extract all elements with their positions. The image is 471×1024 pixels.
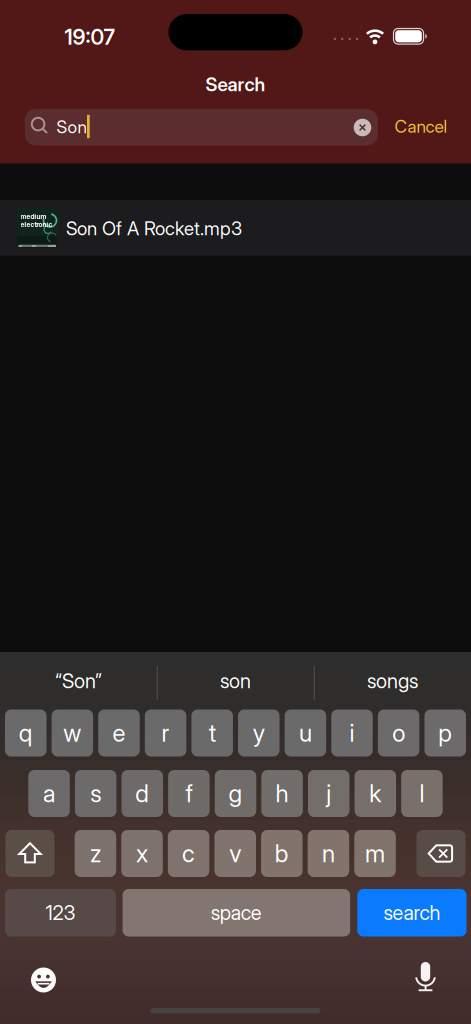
button[interactable]: r <box>145 709 186 756</box>
button[interactable]: a <box>28 770 70 817</box>
staticText: x <box>136 839 148 868</box>
staticText: 123 <box>45 901 75 925</box>
button[interactable]: g <box>215 770 256 817</box>
staticText: m <box>365 839 385 868</box>
staticText: Cancel <box>394 116 447 137</box>
button[interactable]: “Son” <box>3 659 153 703</box>
staticText: 19:07 <box>64 24 114 50</box>
button[interactable]: b <box>261 830 303 877</box>
staticText: t <box>209 719 216 747</box>
button[interactable]: Clear text <box>354 119 371 136</box>
staticText: Son <box>56 117 86 137</box>
button[interactable]: k <box>355 770 396 817</box>
staticText: son <box>220 669 251 693</box>
staticText: i <box>349 719 354 747</box>
button[interactable]: o <box>378 709 419 756</box>
staticText: n <box>322 839 335 868</box>
staticText: songs <box>367 669 418 693</box>
button[interactable]: u <box>285 709 326 756</box>
button[interactable]: z <box>75 830 116 877</box>
button[interactable]: n <box>308 830 349 877</box>
staticText: s <box>90 779 101 808</box>
staticText: k <box>369 779 381 808</box>
staticText: electronic <box>20 221 52 228</box>
button[interactable]: search <box>357 889 466 936</box>
staticText: h <box>276 779 289 808</box>
button[interactable]: Cancel <box>379 114 463 138</box>
staticText: y <box>253 719 265 747</box>
staticText: u <box>299 719 312 747</box>
staticText: search <box>383 901 440 925</box>
button[interactable]: y <box>238 709 280 756</box>
button[interactable]: m <box>354 830 396 877</box>
button[interactable]: Search field, Son <box>25 109 378 145</box>
staticText: Search <box>205 73 265 95</box>
button[interactable]: p <box>424 709 466 756</box>
staticText: d <box>135 779 149 808</box>
staticText: p <box>438 719 452 747</box>
button[interactable]: Dictation <box>415 962 436 992</box>
staticText: q <box>19 719 33 747</box>
button[interactable]: w <box>52 709 93 756</box>
staticText: g <box>228 779 242 808</box>
staticText: o <box>392 719 405 747</box>
button[interactable]: i <box>331 709 373 756</box>
staticText: r <box>162 719 170 747</box>
button[interactable]: songs <box>317 659 467 703</box>
button[interactable]: q <box>5 709 46 756</box>
button[interactable]: Emoji <box>31 967 56 992</box>
staticText: c <box>182 839 195 868</box>
staticText: f <box>185 779 192 808</box>
button[interactable]: s <box>75 770 116 817</box>
button[interactable]: f <box>168 770 210 817</box>
staticText: medium <box>20 213 46 220</box>
staticText: l <box>419 779 424 808</box>
staticText: b <box>275 839 289 868</box>
button[interactable]: t <box>191 709 233 756</box>
button[interactable]: space <box>123 889 350 936</box>
button[interactable]: h <box>261 770 303 817</box>
button[interactable]: l <box>401 770 443 817</box>
staticText: z <box>90 839 101 868</box>
staticText: a <box>43 779 55 808</box>
button[interactable]: j <box>308 770 349 817</box>
staticText: Son Of A Rocket.mp3 <box>66 217 242 239</box>
button[interactable]: d <box>121 770 163 817</box>
staticText: “Son” <box>55 669 102 693</box>
button[interactable]: v <box>214 830 256 877</box>
staticText: e <box>112 719 125 747</box>
button[interactable]: Delete <box>416 830 465 877</box>
button[interactable]: e <box>98 709 140 756</box>
staticText: w <box>63 719 81 747</box>
button[interactable]: c <box>168 830 209 877</box>
button[interactable]: 123 <box>5 889 116 936</box>
staticText: v <box>229 839 241 868</box>
button[interactable]: Shift <box>5 830 54 877</box>
button[interactable]: son <box>160 659 310 703</box>
button[interactable]: medium <box>0 200 471 255</box>
staticText: space <box>211 901 262 925</box>
staticText: j <box>326 779 331 808</box>
button[interactable]: x <box>121 830 163 877</box>
